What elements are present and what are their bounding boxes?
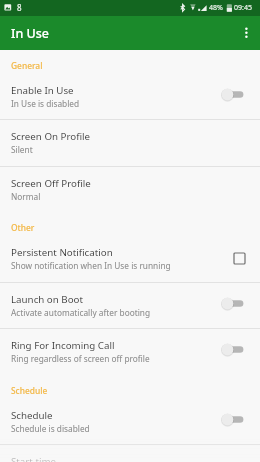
staticText: Show notification when In Use is running bbox=[11, 260, 171, 271]
button[interactable]: Enable In Use bbox=[0, 74, 260, 120]
staticText: Start time bbox=[11, 455, 57, 462]
staticText: Ring regardless of screen off profile bbox=[11, 353, 150, 364]
staticText: General bbox=[11, 60, 43, 71]
button[interactable]: Schedule bbox=[0, 399, 260, 445]
staticText: Other bbox=[11, 222, 35, 233]
button[interactable]: Ring For Incoming Call bbox=[0, 329, 260, 375]
staticText: Normal bbox=[11, 191, 41, 202]
staticText: Ring For Incoming Call bbox=[11, 339, 115, 352]
staticText: Launch on Boot bbox=[11, 293, 83, 306]
staticText: In Use bbox=[11, 25, 49, 42]
staticText: Schedule is disabled bbox=[11, 423, 90, 434]
staticText: Persistent Notification bbox=[11, 246, 113, 259]
staticText: Screen Off Profile bbox=[11, 177, 91, 190]
button[interactable]: Persistent Notification bbox=[0, 236, 260, 282]
staticText: Silent bbox=[11, 144, 33, 155]
staticText: In Use is disabled bbox=[11, 98, 80, 109]
button[interactable]: Screen Off Profile bbox=[0, 167, 260, 213]
button[interactable]: Screen On Profile bbox=[0, 120, 260, 166]
staticText: Screen On Profile bbox=[11, 130, 91, 143]
button[interactable]: More options bbox=[234, 16, 259, 50]
staticText: 48% bbox=[209, 3, 223, 13]
staticText: 09:45 bbox=[234, 3, 252, 13]
staticText: Schedule bbox=[11, 409, 53, 422]
staticText: 8 bbox=[17, 2, 22, 13]
button[interactable]: Start time bbox=[0, 445, 260, 462]
staticText: Enable In Use bbox=[11, 84, 74, 97]
button[interactable]: Launch on Boot bbox=[0, 283, 260, 329]
staticText: Activate automatically after booting bbox=[11, 307, 151, 318]
staticText: Schedule bbox=[11, 385, 48, 396]
